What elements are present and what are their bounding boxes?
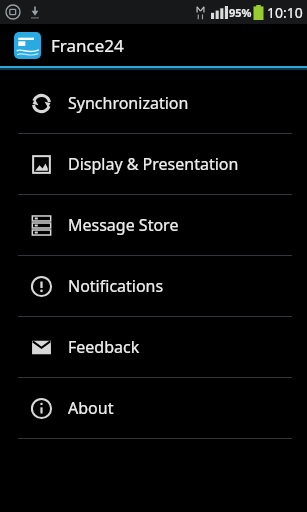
staticText: About bbox=[68, 397, 114, 419]
staticText: 10:10 bbox=[267, 3, 303, 22]
staticText: France24 bbox=[51, 34, 124, 57]
button[interactable]: About bbox=[0, 378, 307, 438]
button[interactable]: Feedback bbox=[0, 317, 307, 377]
button[interactable]: Message Store bbox=[0, 195, 307, 255]
staticText: Feedback bbox=[68, 336, 140, 358]
button[interactable]: Notifications bbox=[0, 256, 307, 316]
staticText: Display & Presentation bbox=[68, 153, 239, 175]
button[interactable]: France24 bbox=[0, 24, 307, 66]
button[interactable]: Synchronization bbox=[0, 73, 307, 133]
staticText: 95% bbox=[229, 5, 252, 20]
staticText: Notifications bbox=[68, 275, 164, 297]
staticText: Message Store bbox=[68, 214, 179, 236]
staticText: Synchronization bbox=[68, 92, 189, 114]
button[interactable]: Display & Presentation bbox=[0, 134, 307, 194]
